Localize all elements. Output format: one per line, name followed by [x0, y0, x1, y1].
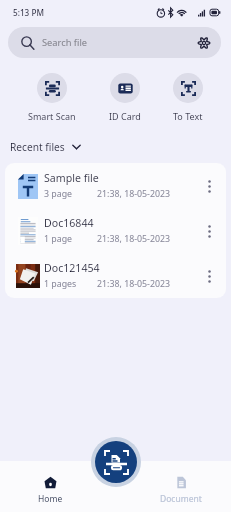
staticText: Smart Scan: [28, 110, 76, 122]
staticText: 21:38, 18-05-2023: [97, 188, 171, 200]
button[interactable]: Doc121454: [5, 253, 226, 298]
staticText: ID Card: [109, 110, 141, 122]
button[interactable]: Doc16844: [5, 208, 226, 253]
button[interactable]: Home: [22, 461, 78, 511]
button[interactable]: Settings: [190, 29, 217, 56]
staticText: Recent files: [10, 140, 65, 154]
staticText: 3 page: [44, 188, 73, 200]
staticText: 21:38, 18-05-2023: [97, 278, 171, 290]
staticText: Doc121454: [44, 261, 100, 275]
staticText: Document: [160, 493, 202, 505]
staticText: 1 pages: [44, 278, 77, 290]
button[interactable]: To Text: [169, 73, 207, 122]
button[interactable]: ID Card: [105, 73, 145, 122]
button[interactable]: Search file: [8, 27, 221, 58]
staticText: 1 page: [44, 233, 73, 245]
staticText: Home: [38, 493, 63, 505]
staticText: 21:38, 18-05-2023: [97, 233, 171, 245]
staticText: Search file: [42, 36, 88, 49]
button[interactable]: More options: [198, 175, 220, 197]
button[interactable]: Recent files: [10, 140, 81, 154]
button[interactable]: Sample file: [5, 163, 226, 208]
staticText: 5:13 PM: [13, 7, 44, 18]
button[interactable]: Document: [153, 461, 209, 511]
button[interactable]: More options: [198, 220, 220, 242]
button[interactable]: Smart Scan: [24, 73, 80, 122]
staticText: Doc16844: [44, 216, 94, 230]
button[interactable]: Scan document: [91, 437, 141, 487]
staticText: To Text: [173, 110, 203, 122]
staticText: Sample file: [44, 171, 99, 185]
button[interactable]: More options: [198, 265, 220, 287]
